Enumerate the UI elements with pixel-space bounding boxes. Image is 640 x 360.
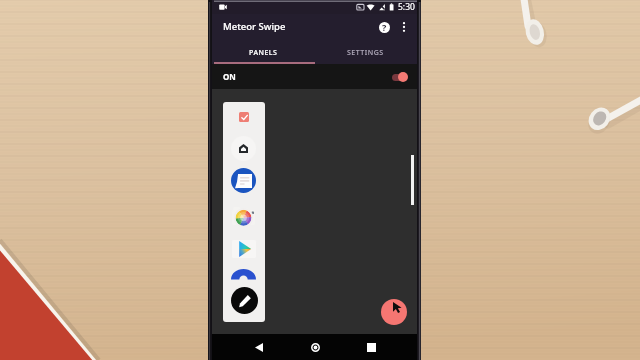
staticText: ? xyxy=(382,21,387,33)
staticText: PANELS xyxy=(249,48,278,58)
button[interactable]: Home xyxy=(303,335,327,359)
button[interactable]: Messages xyxy=(231,168,256,193)
button[interactable]: Tasks xyxy=(239,112,249,122)
staticText: SETTINGS xyxy=(347,48,384,58)
button[interactable]: Back xyxy=(247,335,271,359)
button[interactable]: Help xyxy=(373,16,395,38)
button[interactable]: ON xyxy=(212,64,417,89)
button[interactable]: More options xyxy=(394,17,414,37)
button[interactable]: App xyxy=(231,267,256,292)
button[interactable]: Home xyxy=(231,136,256,161)
staticText: 5:30 xyxy=(398,1,415,13)
button[interactable]: Play Store xyxy=(231,236,256,261)
button[interactable]: Add panel xyxy=(381,299,407,325)
button[interactable]: Camera xyxy=(231,203,256,228)
button[interactable]: Recents xyxy=(359,335,383,359)
staticText: Meteor Swipe xyxy=(223,20,286,33)
staticText: ON xyxy=(223,71,236,82)
button[interactable]: Edit xyxy=(231,287,258,314)
button[interactable]: PANELS xyxy=(212,41,314,64)
button[interactable]: SETTINGS xyxy=(314,41,417,64)
